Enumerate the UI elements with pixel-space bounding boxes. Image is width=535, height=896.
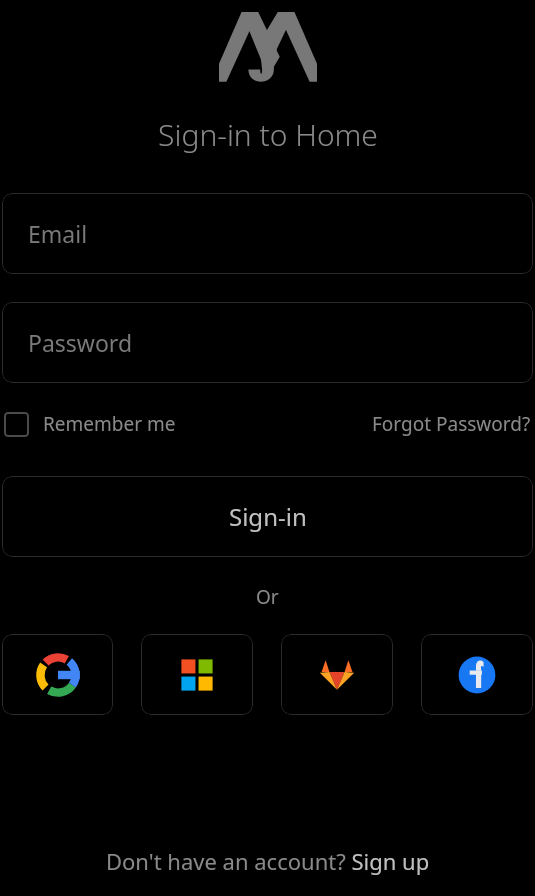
button[interactable]: Email <box>2 193 533 274</box>
button[interactable]: Sign in with Microsoft <box>141 634 253 715</box>
button[interactable]: Sign-in <box>2 476 533 557</box>
button[interactable]: Remember me <box>2 405 178 443</box>
button[interactable]: Forgot Password? <box>370 405 533 443</box>
staticText: Forgot Password? <box>372 411 531 437</box>
staticText: Don't have an account? Sign up <box>106 846 430 876</box>
staticText: Password <box>28 327 133 358</box>
button[interactable]: Password <box>2 302 533 383</box>
staticText: Email <box>28 218 88 249</box>
staticText: Or <box>256 584 279 610</box>
button[interactable]: Sign in with GitLab <box>281 634 393 715</box>
button[interactable]: Sign in with Google <box>2 634 113 715</box>
button[interactable]: Sign in with Facebook <box>421 634 533 715</box>
staticText: Sign-in <box>229 500 307 533</box>
staticText: Remember me <box>43 411 176 437</box>
button[interactable]: Don't have an account? Sign up <box>98 840 438 882</box>
staticText: Sign-in to Home <box>158 114 378 155</box>
